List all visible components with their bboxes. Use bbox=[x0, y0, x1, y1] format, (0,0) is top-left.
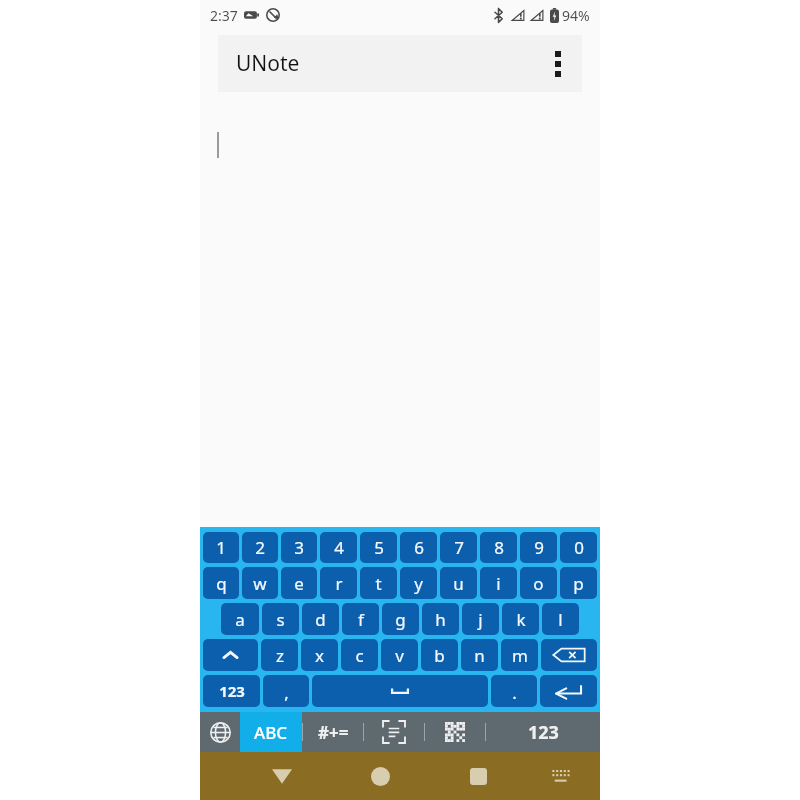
staticText: 7 bbox=[454, 536, 464, 559]
button[interactable]: g bbox=[382, 603, 419, 635]
staticText: j bbox=[478, 608, 483, 631]
button[interactable]: 6 bbox=[400, 532, 437, 563]
staticText: k bbox=[516, 608, 526, 631]
staticText: 3 bbox=[294, 536, 304, 559]
button[interactable]: 1 bbox=[203, 532, 239, 563]
staticText: 123 bbox=[219, 681, 245, 701]
button[interactable]: Enter bbox=[540, 675, 597, 707]
staticText: 5 bbox=[374, 536, 384, 559]
button[interactable]: d bbox=[302, 603, 339, 635]
staticText: u bbox=[453, 572, 464, 595]
staticText: r bbox=[335, 572, 343, 595]
button[interactable]: e bbox=[281, 567, 317, 599]
button[interactable]: . bbox=[491, 675, 537, 707]
button[interactable]: 3 bbox=[281, 532, 317, 563]
staticText: f bbox=[358, 608, 364, 631]
staticText: 1 bbox=[216, 536, 226, 559]
button[interactable]: More options bbox=[538, 44, 578, 84]
button[interactable]: UNote bbox=[218, 35, 582, 92]
button[interactable]: r bbox=[320, 567, 357, 599]
staticText: m bbox=[512, 644, 528, 667]
button[interactable]: 123 bbox=[203, 675, 260, 707]
staticText: 0 bbox=[574, 536, 584, 559]
button[interactable]: y bbox=[400, 567, 437, 599]
button[interactable]: 5 bbox=[360, 532, 397, 563]
staticText: UNote bbox=[236, 49, 300, 78]
button[interactable]: z bbox=[261, 639, 298, 671]
button[interactable]: Back bbox=[259, 753, 305, 799]
button[interactable]: o bbox=[520, 567, 557, 599]
button[interactable]: Scan QR code bbox=[425, 712, 485, 752]
button[interactable]: 7 bbox=[440, 532, 477, 563]
staticText: , bbox=[284, 681, 289, 704]
button[interactable]: c bbox=[341, 639, 378, 671]
button[interactable]: Recent apps bbox=[455, 753, 501, 799]
staticText: q bbox=[216, 572, 227, 595]
staticText: e bbox=[294, 572, 304, 595]
button[interactable]: 2 bbox=[242, 532, 278, 563]
button[interactable]: 4 bbox=[320, 532, 357, 563]
button[interactable]: Hide keyboard bbox=[540, 755, 582, 797]
button[interactable]: #+= bbox=[303, 712, 363, 752]
staticText: t bbox=[375, 572, 382, 595]
staticText: x bbox=[315, 644, 324, 667]
staticText: . bbox=[512, 681, 517, 704]
button[interactable]: 0 bbox=[560, 532, 597, 563]
button[interactable]: Home bbox=[357, 753, 403, 799]
staticText: z bbox=[276, 644, 284, 667]
staticText: #+= bbox=[318, 721, 349, 744]
button[interactable]: b bbox=[421, 639, 458, 671]
staticText: c bbox=[355, 644, 364, 667]
button[interactable]: 9 bbox=[520, 532, 557, 563]
staticText: 2 bbox=[255, 536, 265, 559]
button[interactable]: , bbox=[263, 675, 309, 707]
button[interactable]: 8 bbox=[480, 532, 517, 563]
button[interactable]: x bbox=[301, 639, 338, 671]
staticText: 2:37 bbox=[210, 6, 238, 25]
staticText: h bbox=[435, 608, 446, 631]
button[interactable]: l bbox=[542, 603, 579, 635]
button[interactable]: k bbox=[502, 603, 539, 635]
button[interactable]: j bbox=[462, 603, 499, 635]
staticText: g bbox=[395, 608, 406, 631]
staticText: y bbox=[414, 572, 423, 595]
staticText: w bbox=[253, 572, 267, 595]
button[interactable]: s bbox=[262, 603, 299, 635]
staticText: 94% bbox=[562, 6, 590, 25]
button[interactable]: Space bbox=[312, 675, 488, 707]
button[interactable]: a bbox=[221, 603, 259, 635]
staticText: 8 bbox=[494, 536, 504, 559]
staticText: 4 bbox=[334, 536, 344, 559]
button[interactable]: Shift bbox=[203, 639, 258, 671]
button[interactable]: i bbox=[480, 567, 517, 599]
button[interactable]: u bbox=[440, 567, 477, 599]
staticText: i bbox=[496, 572, 501, 595]
staticText: 9 bbox=[534, 536, 544, 559]
button[interactable]: ABC bbox=[240, 712, 302, 752]
button[interactable]: v bbox=[381, 639, 418, 671]
button[interactable]: q bbox=[203, 567, 239, 599]
staticText: 123 bbox=[528, 720, 559, 745]
staticText: s bbox=[276, 608, 285, 631]
staticText: ABC bbox=[254, 721, 288, 744]
button[interactable]: n bbox=[461, 639, 498, 671]
staticText: p bbox=[573, 572, 584, 595]
staticText: l bbox=[558, 608, 563, 631]
staticText: b bbox=[434, 644, 445, 667]
staticText: a bbox=[235, 608, 245, 631]
staticText: d bbox=[315, 608, 326, 631]
staticText: v bbox=[395, 644, 404, 667]
button[interactable]: p bbox=[560, 567, 597, 599]
button[interactable]: t bbox=[360, 567, 397, 599]
button[interactable]: w bbox=[242, 567, 278, 599]
button[interactable]: f bbox=[342, 603, 379, 635]
staticText: 6 bbox=[414, 536, 424, 559]
button[interactable]: 123 bbox=[486, 712, 600, 752]
button[interactable]: Scan text bbox=[364, 712, 424, 752]
button[interactable]: h bbox=[422, 603, 459, 635]
button[interactable]: Change language bbox=[200, 712, 240, 752]
button[interactable]: m bbox=[501, 639, 538, 671]
staticText: o bbox=[533, 572, 544, 595]
staticText: n bbox=[474, 644, 485, 667]
button[interactable]: Backspace bbox=[541, 639, 597, 671]
